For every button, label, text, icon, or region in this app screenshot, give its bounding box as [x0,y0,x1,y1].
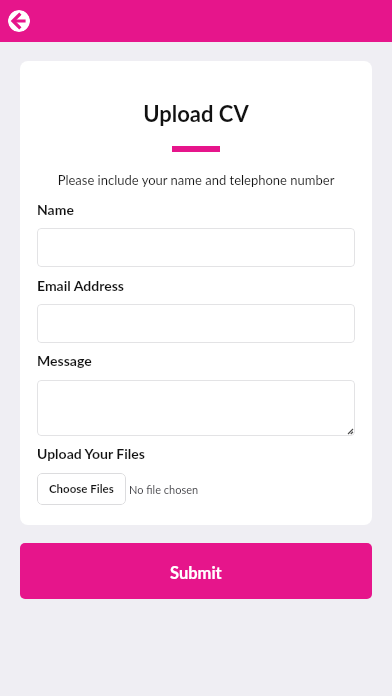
staticText: Please include your name and telephone n… [37,172,355,188]
button[interactable] [37,304,355,343]
button[interactable]: Choose Files [37,473,126,505]
staticText: Message [37,352,92,369]
button[interactable]: Back [8,10,30,32]
staticText: Choose Files [49,482,114,496]
staticText: Submit [170,563,222,583]
staticText: No file chosen [129,483,199,496]
staticText: Email Address [37,277,124,294]
staticText: Upload Your Files [37,445,145,462]
button[interactable]: Submit [20,543,372,599]
staticText: Upload CV [37,100,355,126]
button[interactable] [37,380,355,436]
staticText: Name [37,201,74,218]
button[interactable] [37,228,355,267]
